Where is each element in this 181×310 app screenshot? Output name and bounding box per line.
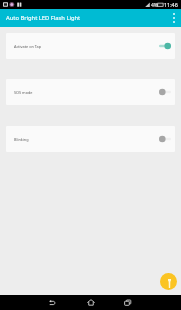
button[interactable]: Back xyxy=(34,295,70,310)
staticText: 11:46 xyxy=(164,1,178,8)
staticText: SOS mode xyxy=(14,90,33,95)
staticText: Blinking xyxy=(14,137,29,142)
button[interactable]: More options xyxy=(167,9,181,27)
button[interactable]: Toggle flashlight xyxy=(160,273,177,290)
staticText: Auto Bright LED Flash Light xyxy=(6,14,81,22)
button[interactable]: Recent apps xyxy=(110,295,146,310)
staticText: Activate on Tap xyxy=(14,44,42,49)
button[interactable]: Home xyxy=(73,295,109,310)
button[interactable]: SOS mode xyxy=(6,79,175,105)
button[interactable]: Toggle off xyxy=(159,86,171,98)
button[interactable]: Activate on Tap xyxy=(6,33,175,59)
button[interactable]: Blinking xyxy=(6,126,175,152)
button[interactable]: Toggle on xyxy=(159,40,171,52)
button[interactable]: Toggle off xyxy=(159,133,171,145)
staticText: 4% xyxy=(151,2,159,9)
